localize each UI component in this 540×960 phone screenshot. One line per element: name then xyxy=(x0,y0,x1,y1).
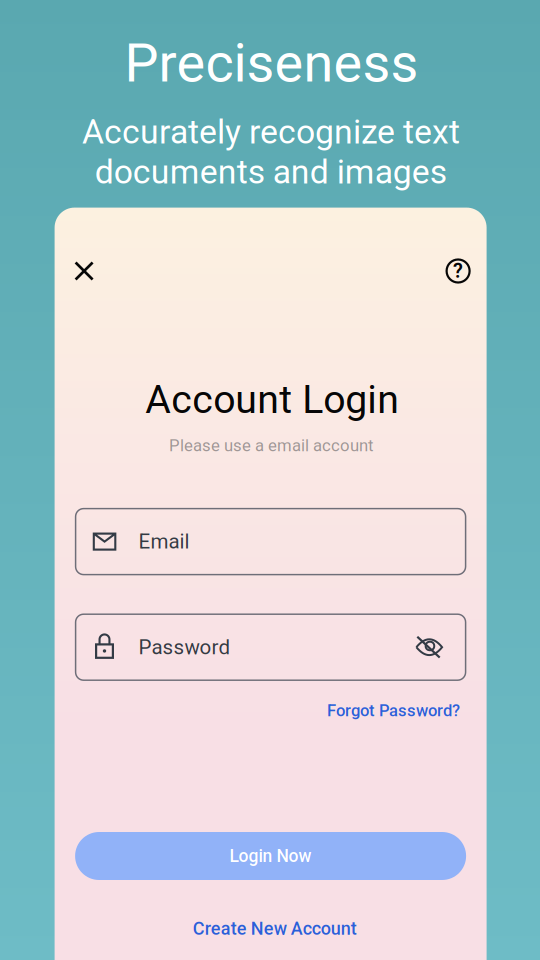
button[interactable]: Login Now xyxy=(75,832,466,880)
staticText: Accurately recognize text xyxy=(82,112,460,152)
staticText: Please use a email account xyxy=(169,436,373,455)
button[interactable]: Password xyxy=(76,614,466,680)
staticText: Password xyxy=(139,635,231,659)
button[interactable]: Help xyxy=(436,249,480,293)
staticText: Login Now xyxy=(230,846,312,866)
button[interactable]: Close xyxy=(62,249,106,293)
staticText: documents and images xyxy=(95,152,447,192)
staticText: ? xyxy=(453,259,463,283)
button[interactable]: Email xyxy=(76,509,466,575)
staticText: Account Login xyxy=(145,377,399,423)
staticText: Create New Account xyxy=(193,918,357,939)
button[interactable]: Show password xyxy=(415,636,444,658)
button[interactable]: Forgot Password? xyxy=(321,695,466,726)
staticText: Forgot Password? xyxy=(327,701,460,720)
staticText: Email xyxy=(139,530,190,554)
button[interactable]: Create New Account xyxy=(187,912,363,945)
staticText: Preciseness xyxy=(125,31,419,94)
